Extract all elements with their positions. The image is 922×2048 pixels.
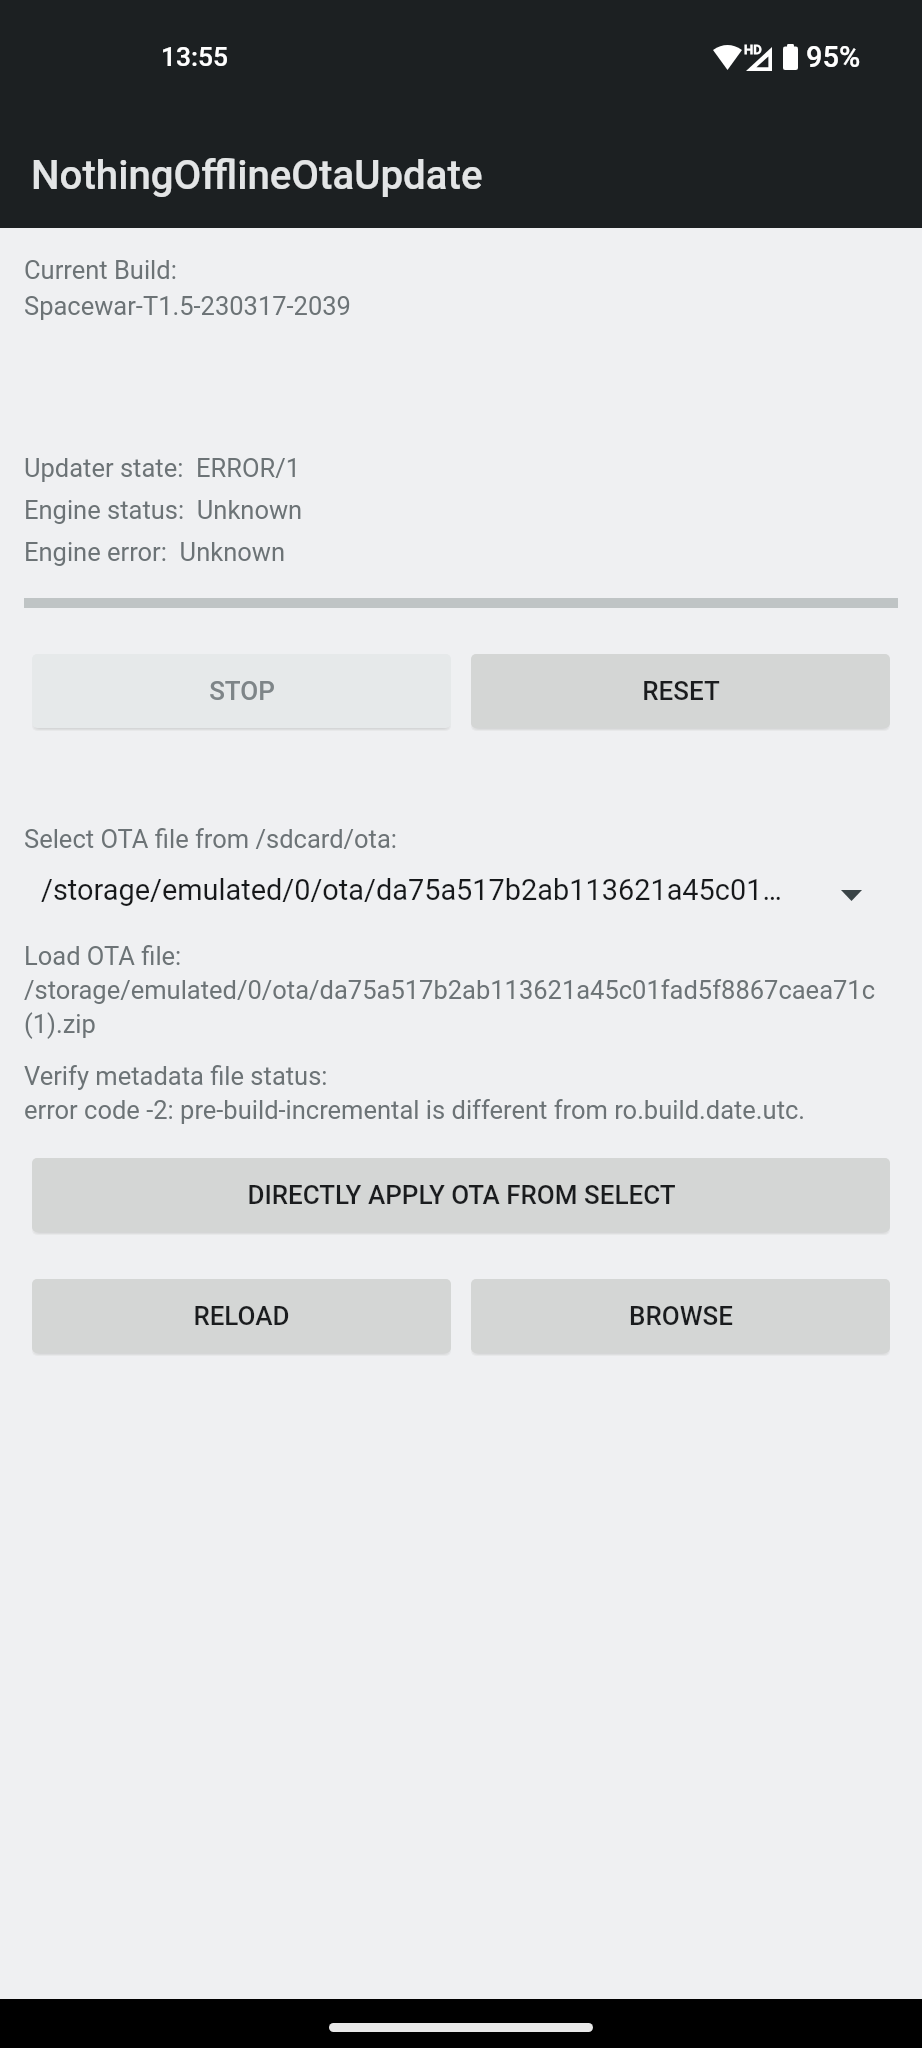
staticText: Spacewar-T1.5-230317-2039: [24, 291, 351, 321]
staticText: Engine status: Unknown: [24, 495, 303, 525]
staticText: 95%: [806, 40, 861, 74]
staticText: Engine error: Unknown: [24, 537, 286, 567]
button[interactable]: /storage/emulated/0/ota/da75a517b2ab1136…: [24, 858, 898, 932]
other: Expand OTA file list: [841, 890, 862, 901]
staticText: Load OTA file:: [24, 941, 182, 971]
staticText: 13:55: [161, 42, 228, 73]
staticText: NothingOfflineOtaUpdate: [31, 152, 483, 199]
other: Mobile signal: [746, 47, 772, 71]
other: Wi-Fi: [713, 45, 742, 70]
staticText: error code -2: pre-build-incremental is …: [24, 1095, 806, 1125]
staticText: DIRECTLY APPLY OTA FROM SELECT: [247, 1180, 676, 1210]
button[interactable]: BROWSE: [471, 1279, 890, 1353]
button[interactable]: DIRECTLY APPLY OTA FROM SELECT: [32, 1158, 890, 1232]
staticText: Current Build:: [24, 255, 177, 285]
staticText: /storage/emulated/0/ota/da75a517b2ab1136…: [41, 873, 782, 907]
staticText: (1).zip: [24, 1009, 96, 1039]
staticText: /storage/emulated/0/ota/da75a517b2ab1136…: [24, 975, 876, 1005]
staticText: Updater state: ERROR/1: [24, 453, 301, 483]
other: Battery: [783, 44, 798, 70]
staticText: RELOAD: [193, 1301, 290, 1331]
staticText: HD: [744, 42, 762, 57]
button[interactable]: RELOAD: [32, 1279, 451, 1353]
button[interactable]: STOP: [32, 654, 451, 728]
staticText: BROWSE: [629, 1301, 733, 1331]
button[interactable]: RESET: [471, 654, 890, 728]
staticText: Verify metadata file status:: [24, 1061, 328, 1091]
staticText: STOP: [209, 676, 275, 706]
staticText: RESET: [642, 676, 720, 706]
staticText: Select OTA file from /sdcard/ota:: [24, 824, 397, 854]
